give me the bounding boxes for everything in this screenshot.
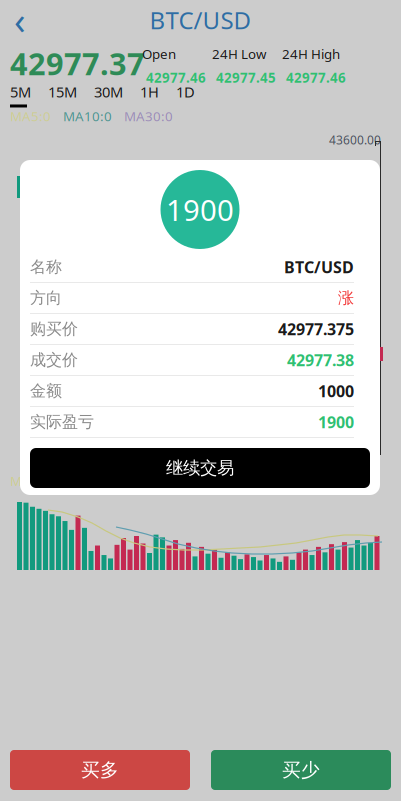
staticText: 金额: [30, 381, 62, 401]
staticText: 买多: [81, 758, 119, 781]
button[interactable]: 继续交易: [30, 448, 370, 488]
button[interactable]: 1H: [140, 80, 159, 107]
staticText: 成交价: [30, 350, 78, 370]
button[interactable]: 买少: [211, 750, 391, 790]
button[interactable]: 1D: [176, 80, 195, 107]
staticText: 名称: [30, 257, 62, 277]
staticText: 实际盈亏: [30, 412, 94, 432]
staticText: 30M: [94, 82, 123, 101]
staticText: 42977.46: [146, 69, 206, 86]
staticText: 1000: [318, 380, 354, 402]
staticText: 24H Low: [212, 45, 266, 63]
staticText: 42977.46: [286, 69, 346, 86]
button[interactable]: 30M: [94, 80, 123, 107]
staticText: 购买价: [30, 319, 78, 339]
staticText: 43600.00: [329, 132, 381, 148]
staticText: 1900: [166, 190, 234, 229]
staticText: MA5:0: [10, 107, 51, 125]
staticText: 5M: [10, 82, 31, 101]
staticText: 1D: [176, 82, 195, 101]
staticText: 42977.45: [216, 69, 276, 86]
button[interactable]: Back: [0, 0, 40, 40]
staticText: 15M: [48, 82, 77, 101]
staticText: 继续交易: [166, 457, 234, 479]
staticText: 1H: [140, 82, 159, 101]
staticText: 42977.37: [10, 43, 145, 84]
staticText: BTC/USD: [149, 4, 251, 36]
staticText: MA30:0: [124, 107, 173, 125]
button[interactable]: 买多: [10, 750, 190, 790]
staticText: 42977.38: [287, 349, 354, 371]
button[interactable]: 5M: [10, 80, 31, 107]
staticText: MA10:0: [63, 107, 112, 125]
staticText: 1900: [318, 411, 354, 433]
staticText: MA5:0: [10, 472, 51, 490]
staticText: 24H High: [282, 45, 340, 63]
staticText: 涨: [338, 288, 354, 308]
staticText: BTC/USD: [284, 256, 354, 278]
staticText: ‹: [14, 0, 26, 45]
staticText: 方向: [30, 288, 62, 308]
staticText: 买少: [282, 758, 320, 781]
staticText: Open: [142, 45, 176, 63]
staticText: 42977.375: [278, 318, 354, 340]
button[interactable]: 15M: [48, 80, 77, 107]
